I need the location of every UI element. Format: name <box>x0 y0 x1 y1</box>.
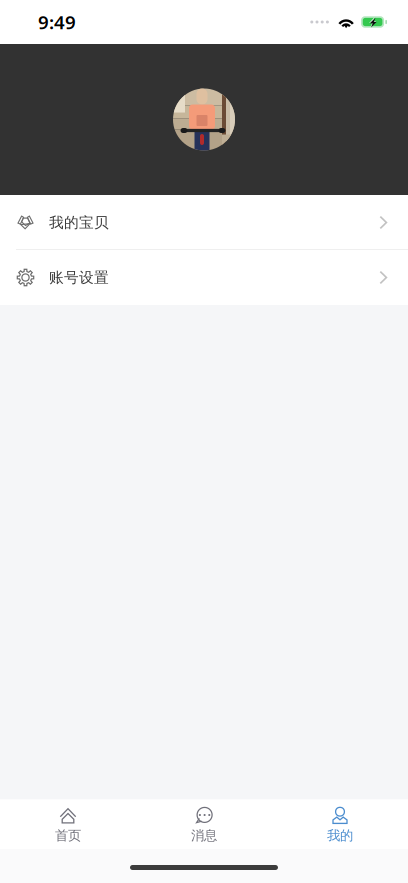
staticText: 9:49 <box>38 10 76 34</box>
staticText: 首页 <box>55 827 81 844</box>
button[interactable]: 账号设置 <box>0 250 408 305</box>
staticText: 账号设置 <box>49 268 109 286</box>
button[interactable]: 我的宝贝 <box>0 195 408 250</box>
staticText: 我的 <box>327 827 353 844</box>
button[interactable]: 我的 <box>272 799 408 851</box>
button[interactable]: 首页 <box>0 799 136 851</box>
button[interactable]: 消息 <box>136 799 272 851</box>
staticText: 消息 <box>191 827 217 844</box>
staticText: 我的宝贝 <box>49 213 109 231</box>
